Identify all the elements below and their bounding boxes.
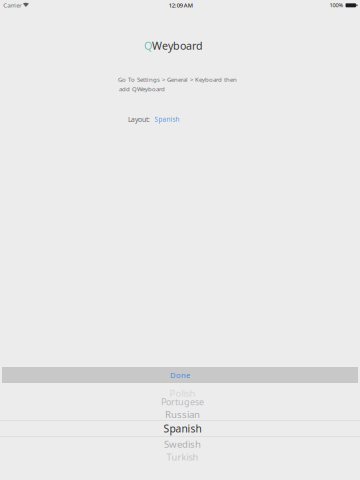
- button[interactable]: Done: [2, 367, 358, 383]
- staticText: Spanish: [154, 115, 179, 124]
- staticText: Layout:: [128, 115, 150, 124]
- staticText: Swedish: [164, 437, 201, 450]
- staticText: Carrier: [3, 1, 21, 9]
- staticText: Go To Settings > General > Keyboard then: [118, 75, 237, 83]
- staticText: Spanish: [163, 422, 201, 436]
- staticText: Turkish: [166, 451, 198, 463]
- staticText: Q: [144, 38, 152, 53]
- staticText: Russian: [165, 408, 200, 421]
- staticText: 100%: [329, 1, 343, 9]
- staticText: Weyboard: [152, 38, 203, 53]
- staticText: Done: [170, 370, 190, 380]
- staticText: Portugese: [161, 396, 204, 408]
- staticText: Polish: [169, 387, 195, 399]
- button[interactable]: Spanish: [154, 115, 179, 124]
- staticText: add QWeyboard: [119, 85, 165, 93]
- staticText: 12:09 AM: [169, 1, 193, 9]
